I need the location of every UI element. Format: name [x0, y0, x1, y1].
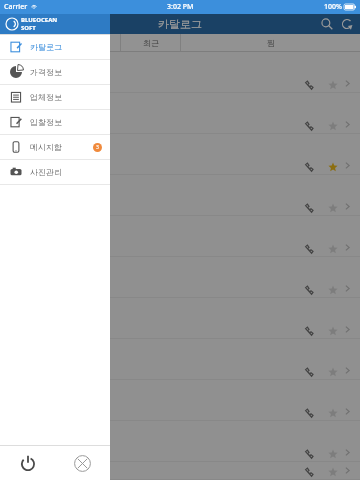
button[interactable]: 부산광역시	[0, 93, 360, 134]
button[interactable]: 가격정보	[0, 60, 110, 84]
button[interactable]: Search	[320, 17, 334, 31]
staticText: BLUEOCEAN	[21, 16, 58, 24]
staticText: 최근	[143, 38, 159, 48]
button[interactable]: 최근	[121, 34, 180, 51]
button[interactable]: 카탈로그	[0, 35, 110, 59]
staticText: 부산광역시	[8, 96, 48, 106]
staticText: 가격정보	[30, 67, 62, 77]
button[interactable]: 인천광역시	[0, 298, 360, 339]
button[interactable]	[0, 339, 360, 380]
staticText: 카탈로그	[30, 42, 62, 52]
staticText: SOFT	[21, 24, 36, 32]
staticText: 신규	[12, 38, 28, 48]
button[interactable]: Close	[55, 446, 110, 480]
button[interactable]	[0, 257, 360, 298]
button[interactable]: 찜	[181, 34, 360, 51]
button[interactable]: 카테고리	[40, 34, 120, 51]
staticText: Carrier	[4, 2, 28, 12]
staticText: 업체정보	[30, 92, 62, 102]
button[interactable]: 메시지함	[0, 135, 110, 159]
button[interactable]: 업체정보	[0, 85, 110, 109]
button[interactable]: 사진관리	[0, 160, 110, 184]
button[interactable]: Power off	[0, 446, 55, 480]
staticText: 카탈로그	[158, 17, 202, 31]
staticText: 3:02 PM	[167, 2, 194, 12]
button[interactable]: 신규	[0, 34, 39, 51]
button[interactable]: 서울특별시 (조합협단체용)	[0, 52, 360, 93]
staticText: 100%	[324, 2, 342, 12]
button[interactable]: 입찰정보	[0, 110, 110, 134]
staticText: 사진관리	[30, 167, 62, 177]
button[interactable]: Refresh	[340, 17, 354, 31]
button[interactable]: 광주광역시 시공수협	[0, 462, 360, 480]
staticText: 광주광역시 시공수협	[8, 465, 83, 476]
button[interactable]	[0, 175, 360, 216]
staticText: 서울특별시 (조합협단체용)	[8, 55, 103, 66]
button[interactable]	[0, 421, 360, 462]
staticText: 찜	[267, 38, 275, 48]
button[interactable]	[0, 380, 360, 421]
staticText: 3	[96, 144, 99, 151]
staticText: 메시지함	[30, 142, 62, 152]
button[interactable]	[0, 134, 360, 175]
staticText: 입찰정보	[30, 117, 62, 127]
button[interactable]: 대구광역시	[0, 216, 360, 257]
